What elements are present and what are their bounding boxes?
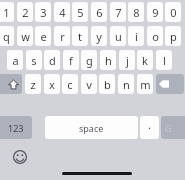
staticText: i bbox=[135, 29, 138, 44]
staticText: d bbox=[49, 53, 56, 68]
button[interactable]: Emoji bbox=[11, 148, 29, 166]
button[interactable]: Go bbox=[161, 116, 185, 139]
staticText: 9 bbox=[152, 5, 159, 20]
button[interactable]: n bbox=[118, 74, 134, 94]
button[interactable]: 5 bbox=[72, 2, 88, 22]
button[interactable]: j bbox=[119, 50, 135, 70]
button[interactable]: 1 bbox=[0, 2, 14, 22]
button[interactable]: w bbox=[17, 26, 33, 46]
button[interactable]: 0 bbox=[165, 2, 181, 22]
staticText: v bbox=[86, 77, 92, 92]
button[interactable]: t bbox=[72, 26, 88, 46]
button[interactable]: c bbox=[62, 74, 78, 94]
button[interactable]: 123 bbox=[0, 116, 32, 139]
staticText: q bbox=[3, 29, 10, 44]
button[interactable]: . bbox=[140, 116, 159, 139]
button[interactable]: m bbox=[137, 74, 153, 94]
button[interactable]: q bbox=[0, 26, 14, 46]
staticText: 123 bbox=[8, 122, 24, 134]
staticText: e bbox=[40, 29, 47, 44]
staticText: a bbox=[12, 53, 19, 68]
staticText: 8 bbox=[133, 5, 140, 20]
button[interactable]: 3 bbox=[35, 2, 51, 22]
staticText: 1 bbox=[3, 5, 10, 20]
button[interactable]: 4 bbox=[54, 2, 70, 22]
button[interactable]: v bbox=[81, 74, 97, 94]
button[interactable]: y bbox=[91, 26, 107, 46]
staticText: 3 bbox=[40, 5, 47, 20]
button[interactable]: Shift bbox=[0, 74, 22, 94]
button[interactable]: r bbox=[54, 26, 70, 46]
button[interactable]: l bbox=[156, 50, 172, 70]
staticText: 7 bbox=[115, 5, 122, 20]
button[interactable]: d bbox=[44, 50, 60, 70]
button[interactable]: Backspace bbox=[156, 74, 184, 94]
staticText: . bbox=[148, 117, 151, 132]
button[interactable]: o bbox=[147, 26, 163, 46]
staticText: k bbox=[142, 53, 148, 68]
staticText: p bbox=[170, 29, 177, 44]
button[interactable]: f bbox=[63, 50, 79, 70]
button[interactable]: i bbox=[128, 26, 144, 46]
button[interactable]: p bbox=[165, 26, 181, 46]
button[interactable]: 6 bbox=[91, 2, 107, 22]
staticText: 4 bbox=[59, 5, 66, 20]
staticText: G bbox=[165, 122, 172, 134]
button[interactable]: h bbox=[100, 50, 116, 70]
staticText: 5 bbox=[77, 5, 84, 20]
button[interactable]: a bbox=[7, 50, 23, 70]
button[interactable]: s bbox=[26, 50, 42, 70]
button[interactable]: g bbox=[81, 50, 97, 70]
staticText: y bbox=[96, 29, 102, 44]
staticText: c bbox=[67, 77, 73, 92]
staticText: t bbox=[78, 29, 82, 44]
staticText: f bbox=[69, 53, 73, 68]
staticText: 6 bbox=[96, 5, 103, 20]
button[interactable]: 7 bbox=[110, 2, 126, 22]
button[interactable]: x bbox=[44, 74, 60, 94]
staticText: u bbox=[115, 29, 122, 44]
staticText: z bbox=[30, 77, 36, 92]
staticText: l bbox=[163, 53, 166, 68]
staticText: w bbox=[21, 29, 30, 44]
staticText: space bbox=[79, 122, 104, 134]
staticText: s bbox=[31, 53, 37, 68]
staticText: o bbox=[152, 29, 159, 44]
button[interactable]: k bbox=[137, 50, 153, 70]
button[interactable]: z bbox=[25, 74, 41, 94]
button[interactable]: space bbox=[45, 116, 138, 139]
staticText: r bbox=[60, 29, 65, 44]
staticText: x bbox=[49, 77, 55, 92]
button[interactable]: 2 bbox=[17, 2, 33, 22]
staticText: j bbox=[126, 53, 129, 68]
staticText: g bbox=[86, 53, 93, 68]
staticText: n bbox=[123, 77, 130, 92]
staticText: m bbox=[140, 77, 151, 92]
button[interactable]: 9 bbox=[147, 2, 163, 22]
staticText: h bbox=[105, 53, 112, 68]
button[interactable]: e bbox=[35, 26, 51, 46]
button[interactable]: 8 bbox=[128, 2, 144, 22]
button[interactable]: u bbox=[110, 26, 126, 46]
button[interactable]: b bbox=[99, 74, 115, 94]
staticText: 0 bbox=[170, 5, 177, 20]
staticText: 2 bbox=[22, 5, 29, 20]
staticText: b bbox=[104, 77, 111, 92]
